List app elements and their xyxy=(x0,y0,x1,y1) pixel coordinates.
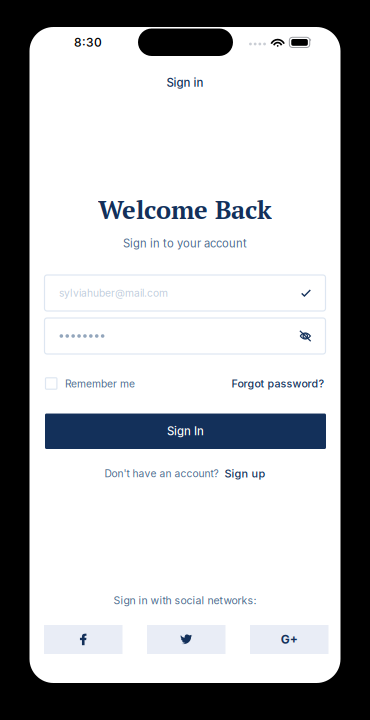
staticText: sylviahuber@mail.com xyxy=(59,287,168,299)
staticText: Sign in with social networks: xyxy=(113,594,256,607)
staticText: Sign in xyxy=(166,76,203,89)
staticText: Sign up xyxy=(224,467,265,480)
button[interactable]: Sign in xyxy=(150,71,220,93)
staticText: Remember me xyxy=(65,377,135,390)
button[interactable]: Remember me xyxy=(45,375,157,391)
button[interactable]: Don't have an account? xyxy=(29,465,340,481)
staticText: G+ xyxy=(281,632,298,647)
button[interactable]: Sign in with Twitter xyxy=(147,625,225,654)
staticText: Sign in to your account xyxy=(123,237,247,250)
staticText: Sign In xyxy=(167,424,204,438)
button[interactable]: Sign in with Facebook xyxy=(44,625,122,654)
button[interactable]: Sign In xyxy=(45,413,326,449)
staticText: Don't have an account? xyxy=(104,467,218,480)
staticText: 8:30 xyxy=(74,35,102,49)
button[interactable]: Sign in with Google Plus xyxy=(250,625,328,654)
staticText: Forgot password? xyxy=(231,377,324,390)
staticText: Welcome Back xyxy=(98,193,272,226)
button[interactable]: Forgot password? xyxy=(214,375,324,391)
